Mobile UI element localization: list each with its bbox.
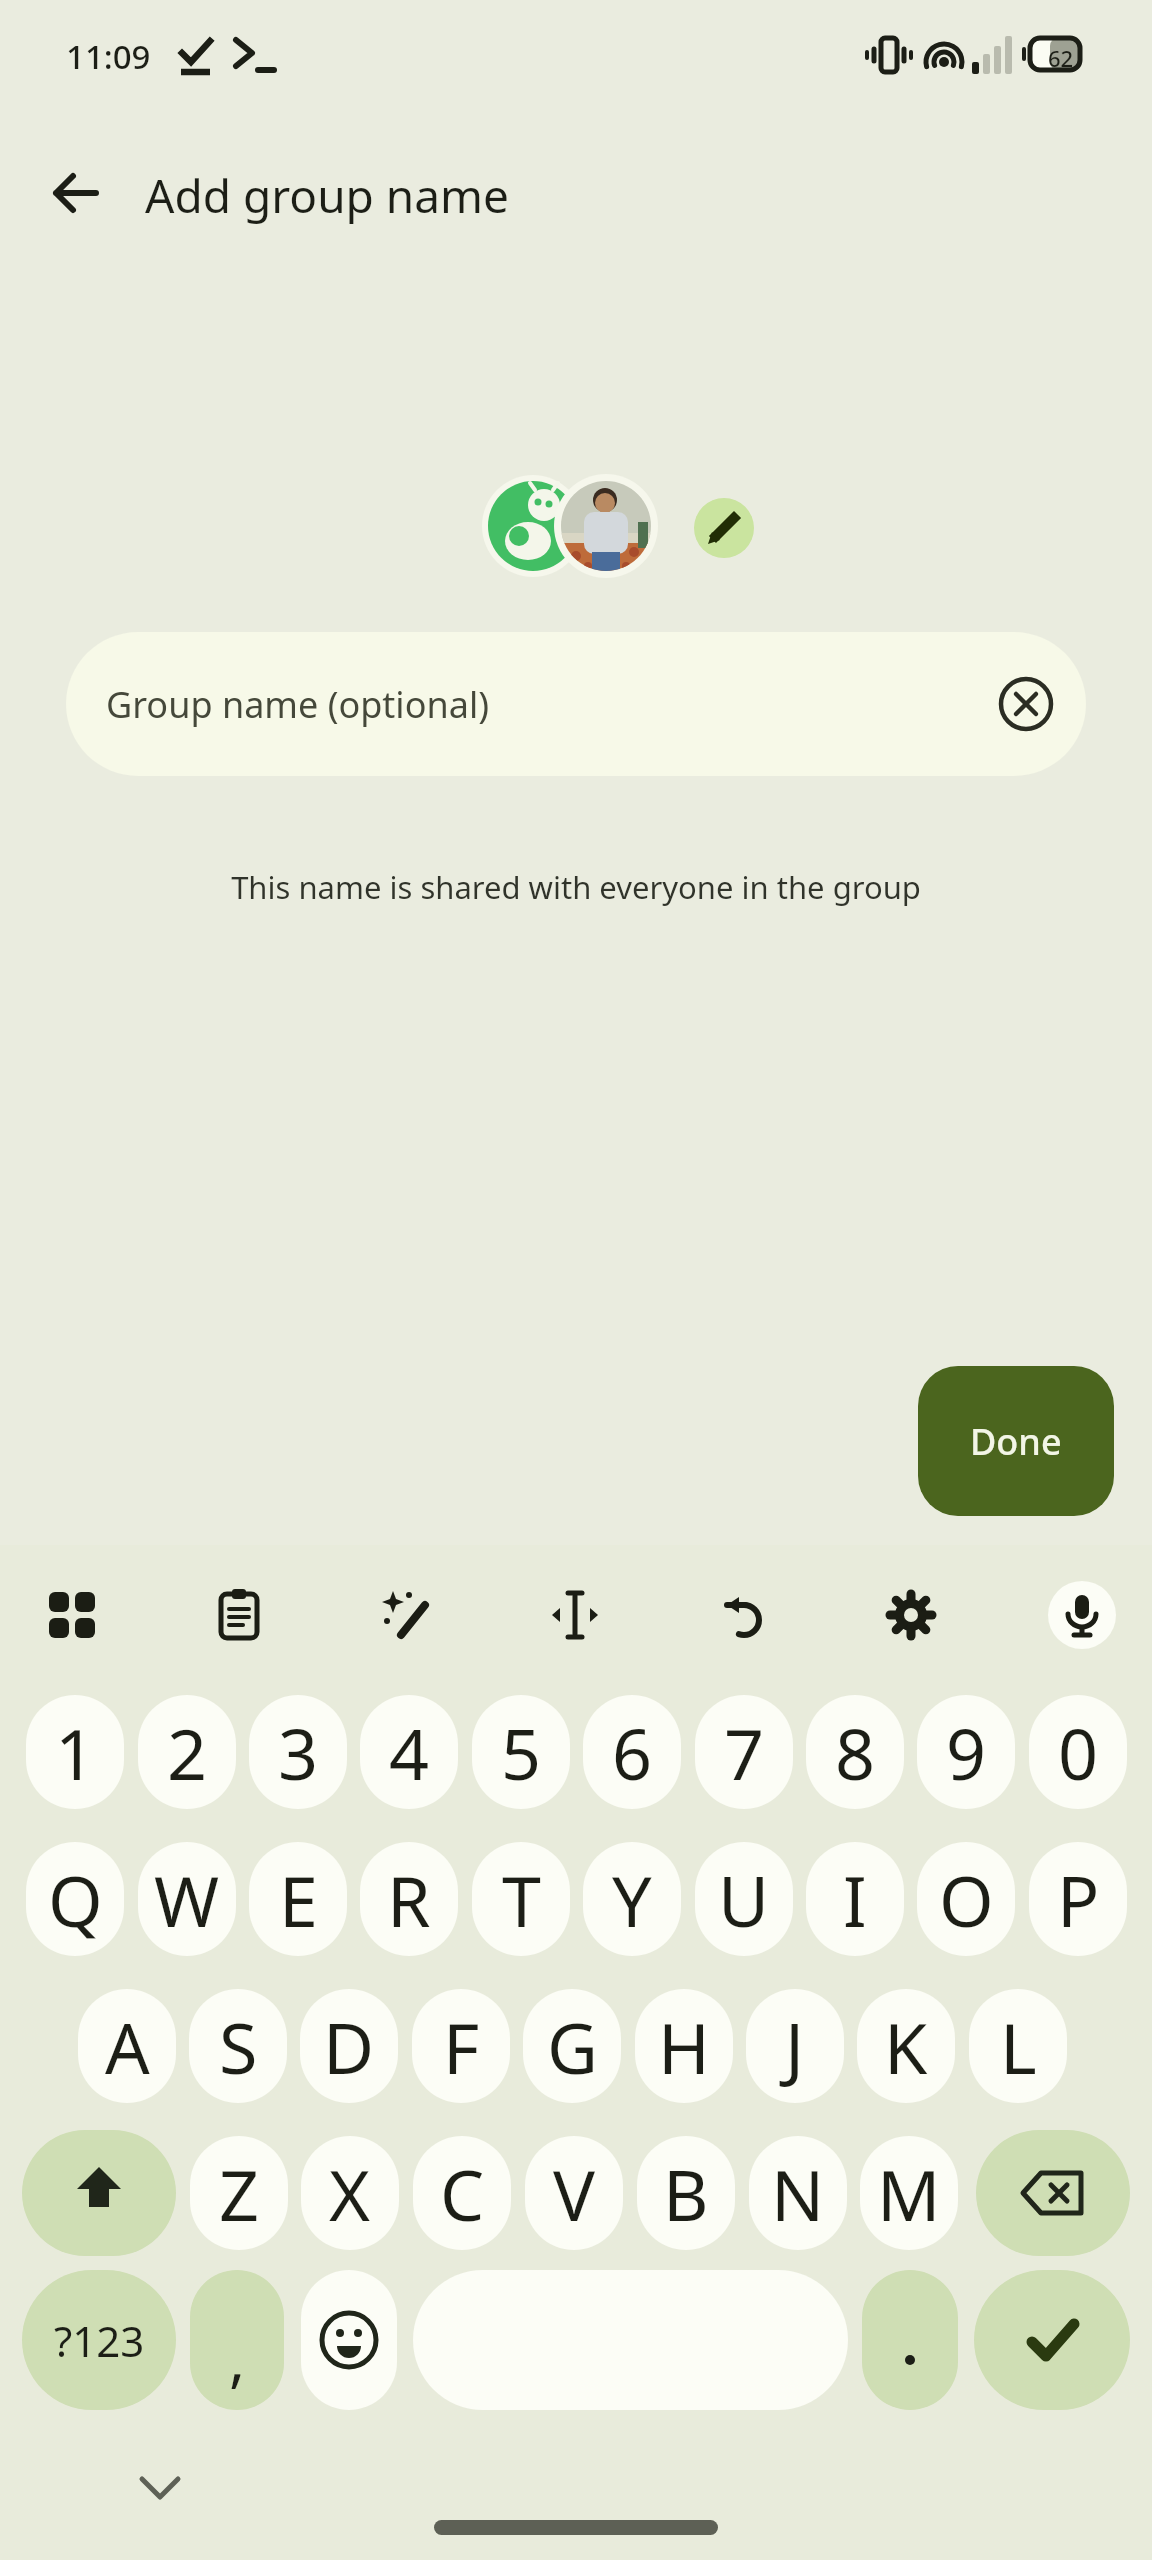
button[interactable]: J (746, 1989, 844, 2103)
button[interactable]: 8 (806, 1695, 904, 1809)
staticText: This name is shared with everyone in the… (0, 866, 1152, 908)
staticText: J (785, 1999, 805, 2094)
staticText: D (323, 1999, 375, 2094)
staticText: 6 (612, 1705, 653, 1800)
staticText: , (229, 2317, 246, 2399)
staticText: O (939, 1852, 994, 1947)
button[interactable]: P (1029, 1842, 1127, 1956)
staticText: N (771, 2146, 825, 2241)
button[interactable]: ?123 (22, 2270, 176, 2410)
button[interactable]: D (300, 1989, 398, 2103)
button[interactable] (22, 2130, 176, 2256)
staticText: 4 (389, 1705, 430, 1800)
button[interactable]: 9 (917, 1695, 1015, 1809)
staticText: R (387, 1852, 431, 1947)
staticText: Done (970, 1417, 1062, 1466)
staticText: P (1057, 1852, 1100, 1947)
button[interactable] (976, 2130, 1130, 2256)
button[interactable]: 3 (249, 1695, 347, 1809)
button[interactable] (413, 2270, 848, 2410)
button[interactable] (1048, 1581, 1116, 1649)
staticText: A (105, 1999, 150, 2094)
button[interactable] (40, 158, 110, 228)
staticText: H (658, 1999, 710, 2094)
staticText: F (443, 1999, 480, 2094)
staticText: S (219, 1999, 258, 2094)
staticText: W (154, 1852, 220, 1947)
button[interactable]: U (695, 1842, 793, 1956)
button[interactable]: F (412, 1989, 510, 2103)
staticText: 7 (724, 1705, 765, 1800)
button[interactable]: X (301, 2136, 399, 2250)
button[interactable]: Done (918, 1366, 1114, 1516)
staticText: T (502, 1852, 541, 1947)
staticText: E (279, 1852, 318, 1947)
button[interactable]: A (78, 1989, 176, 2103)
button[interactable]: K (857, 1989, 955, 2103)
button[interactable]: 5 (472, 1695, 570, 1809)
button[interactable]: I (806, 1842, 904, 1956)
button[interactable]: M (860, 2136, 958, 2250)
staticText: L (1000, 1999, 1037, 2094)
button[interactable]: V (525, 2136, 623, 2250)
button[interactable] (38, 1581, 106, 1649)
staticText: K (884, 1999, 928, 2094)
button[interactable] (974, 2270, 1130, 2410)
button[interactable]: , (190, 2270, 284, 2410)
button[interactable] (709, 1581, 777, 1649)
button[interactable]: 7 (695, 1695, 793, 1809)
button[interactable]: E (249, 1842, 347, 1956)
button[interactable]: 4 (360, 1695, 458, 1809)
button[interactable]: 1 (26, 1695, 124, 1809)
staticText: 9 (946, 1705, 987, 1800)
staticText: 11:09 (66, 34, 151, 79)
button[interactable] (877, 1581, 945, 1649)
button[interactable] (541, 1581, 609, 1649)
button[interactable]: S (189, 1989, 287, 2103)
staticText: ?123 (54, 2312, 145, 2369)
staticText: 8 (835, 1705, 876, 1800)
button[interactable]: Group name (optional) (66, 632, 1086, 776)
button[interactable]: L (969, 1989, 1067, 2103)
staticText: Z (219, 2146, 260, 2241)
button[interactable] (301, 2270, 397, 2410)
button[interactable]: H (635, 1989, 733, 2103)
staticText: 1 (55, 1705, 96, 1800)
button[interactable]: G (523, 1989, 621, 2103)
staticText: Group name (optional) (106, 680, 489, 729)
staticText: 62 (1048, 43, 1074, 73)
button[interactable]: 0 (1029, 1695, 1127, 1809)
button[interactable]: C (413, 2136, 511, 2250)
button[interactable]: N (749, 2136, 847, 2250)
staticText: C (440, 2146, 485, 2241)
staticText: 5 (501, 1705, 542, 1800)
staticText: G (547, 1999, 598, 2094)
staticText: U (718, 1852, 770, 1947)
staticText: I (843, 1852, 867, 1947)
button[interactable]: 2 (138, 1695, 236, 1809)
staticText: 0 (1058, 1705, 1099, 1800)
staticText: 2 (167, 1705, 208, 1800)
staticText: Add group name (145, 164, 509, 227)
button[interactable]: W (138, 1842, 236, 1956)
staticText: 3 (278, 1705, 319, 1800)
button[interactable]: R (360, 1842, 458, 1956)
staticText: V (553, 2146, 595, 2241)
button[interactable] (120, 2452, 200, 2524)
button[interactable] (862, 2270, 958, 2410)
button[interactable]: Q (26, 1842, 124, 1956)
staticText: Q (48, 1852, 103, 1947)
button[interactable]: B (637, 2136, 735, 2250)
staticText: X (329, 2146, 371, 2241)
button[interactable] (694, 498, 754, 558)
button[interactable]: Z (190, 2136, 288, 2250)
button[interactable]: O (917, 1842, 1015, 1956)
staticText: B (663, 2146, 709, 2241)
button[interactable]: Y (583, 1842, 681, 1956)
button[interactable] (373, 1581, 441, 1649)
button[interactable] (996, 674, 1056, 734)
button[interactable] (205, 1581, 273, 1649)
staticText: M (877, 2146, 941, 2241)
button[interactable]: T (472, 1842, 570, 1956)
button[interactable]: 6 (583, 1695, 681, 1809)
